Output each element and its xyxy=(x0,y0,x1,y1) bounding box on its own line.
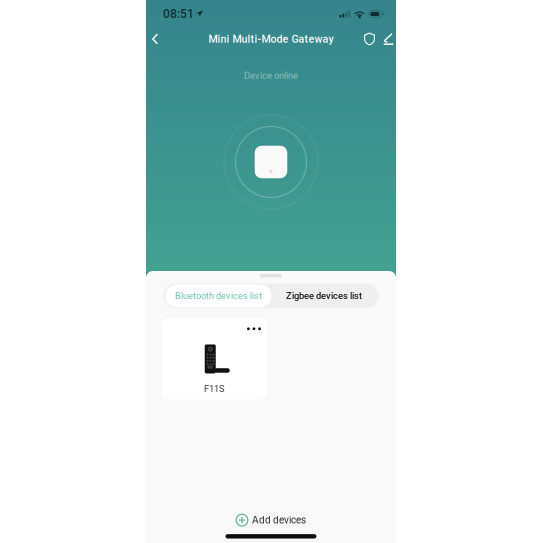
button[interactable]: Security xyxy=(361,29,378,48)
button[interactable]: Edit xyxy=(380,30,397,48)
staticText: 08:51 xyxy=(163,7,194,21)
button[interactable]: Zigbee devices list xyxy=(271,284,376,307)
staticText: Mini Multi-Mode Gateway xyxy=(208,33,333,45)
button[interactable]: Back xyxy=(145,26,165,51)
button[interactable]: F11S xyxy=(162,318,267,399)
staticText: Device online xyxy=(244,70,298,81)
staticText: F11S xyxy=(204,383,225,394)
staticText: Add devices xyxy=(252,514,306,526)
button[interactable]: Add devices xyxy=(236,507,306,533)
staticText: Bluetooth devices list xyxy=(175,290,262,301)
button[interactable]: Bluetooth devices list xyxy=(165,284,271,307)
staticText: Zigbee devices list xyxy=(286,290,362,301)
